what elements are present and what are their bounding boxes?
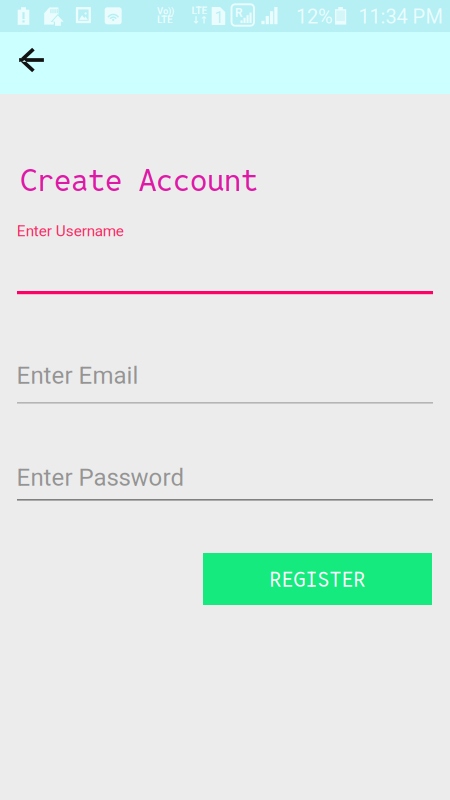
staticText: Enter Password <box>17 463 185 492</box>
staticText: Create Account <box>20 160 258 200</box>
staticText: LTE <box>191 5 207 17</box>
staticText: ↓↑ <box>191 14 207 26</box>
button[interactable]: Back <box>3 29 59 91</box>
staticText: 12% <box>296 5 333 28</box>
staticText: R <box>235 6 243 20</box>
staticText: 1 <box>214 8 223 27</box>
staticText: Enter Email <box>17 361 139 390</box>
staticText: Enter Username <box>17 222 124 240</box>
staticText: REGISTER <box>269 565 365 593</box>
staticText: 11:34 PM <box>359 5 443 28</box>
button[interactable]: REGISTER <box>203 553 432 605</box>
staticText: LTE <box>157 14 173 26</box>
staticText: Vo)) <box>157 5 174 16</box>
